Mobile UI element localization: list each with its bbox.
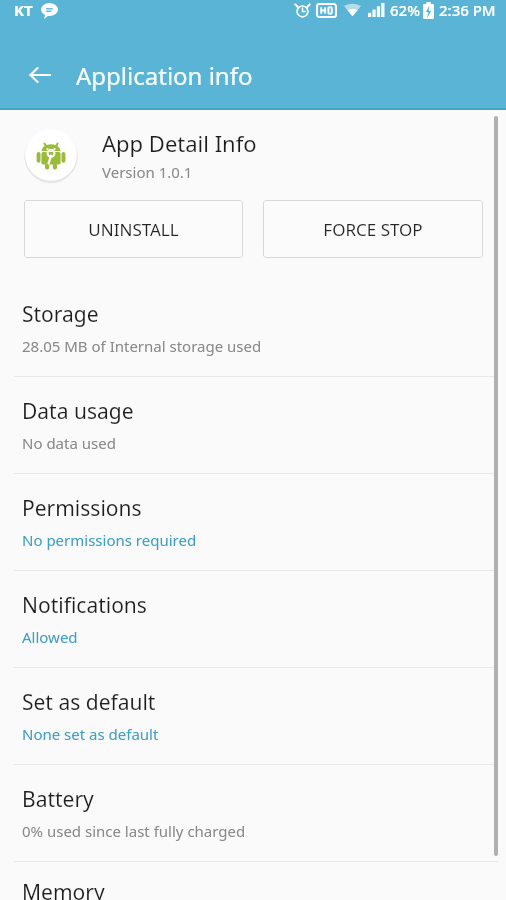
button[interactable]: FORCE STOP <box>263 200 483 258</box>
staticText: KT <box>14 0 33 20</box>
button[interactable]: UNINSTALL <box>24 200 243 258</box>
button[interactable]: Memory <box>0 862 506 900</box>
staticText: App Detail Info <box>102 128 257 158</box>
staticText: 0% used since last fully charged <box>22 821 246 841</box>
button[interactable]: Permissions <box>0 474 506 570</box>
staticText: 62% <box>390 0 420 20</box>
staticText: UNINSTALL <box>88 218 179 241</box>
button[interactable]: Data usage <box>0 377 506 473</box>
staticText: Notifications <box>22 591 147 620</box>
staticText: No data used <box>22 433 116 453</box>
button[interactable]: Back <box>20 55 60 95</box>
staticText: Data usage <box>22 397 134 426</box>
button[interactable]: Notifications <box>0 571 506 667</box>
staticText: Memory <box>22 878 105 900</box>
staticText: Battery <box>22 785 94 814</box>
staticText: Version 1.0.1 <box>102 162 193 182</box>
button[interactable]: Battery <box>0 765 506 861</box>
staticText: Set as default <box>22 688 156 717</box>
staticText: None set as default <box>22 724 159 744</box>
staticText: Storage <box>22 300 99 329</box>
staticText: Allowed <box>22 627 78 647</box>
staticText: Application info <box>76 59 253 92</box>
staticText: 28.05 MB of Internal storage used <box>22 336 262 356</box>
staticText: Permissions <box>22 494 142 523</box>
staticText: 2:36 PM <box>439 0 496 20</box>
staticText: No permissions required <box>22 530 197 550</box>
staticText: FORCE STOP <box>323 218 423 241</box>
button[interactable]: Set as default <box>0 668 506 764</box>
button[interactable]: Storage <box>0 280 506 376</box>
